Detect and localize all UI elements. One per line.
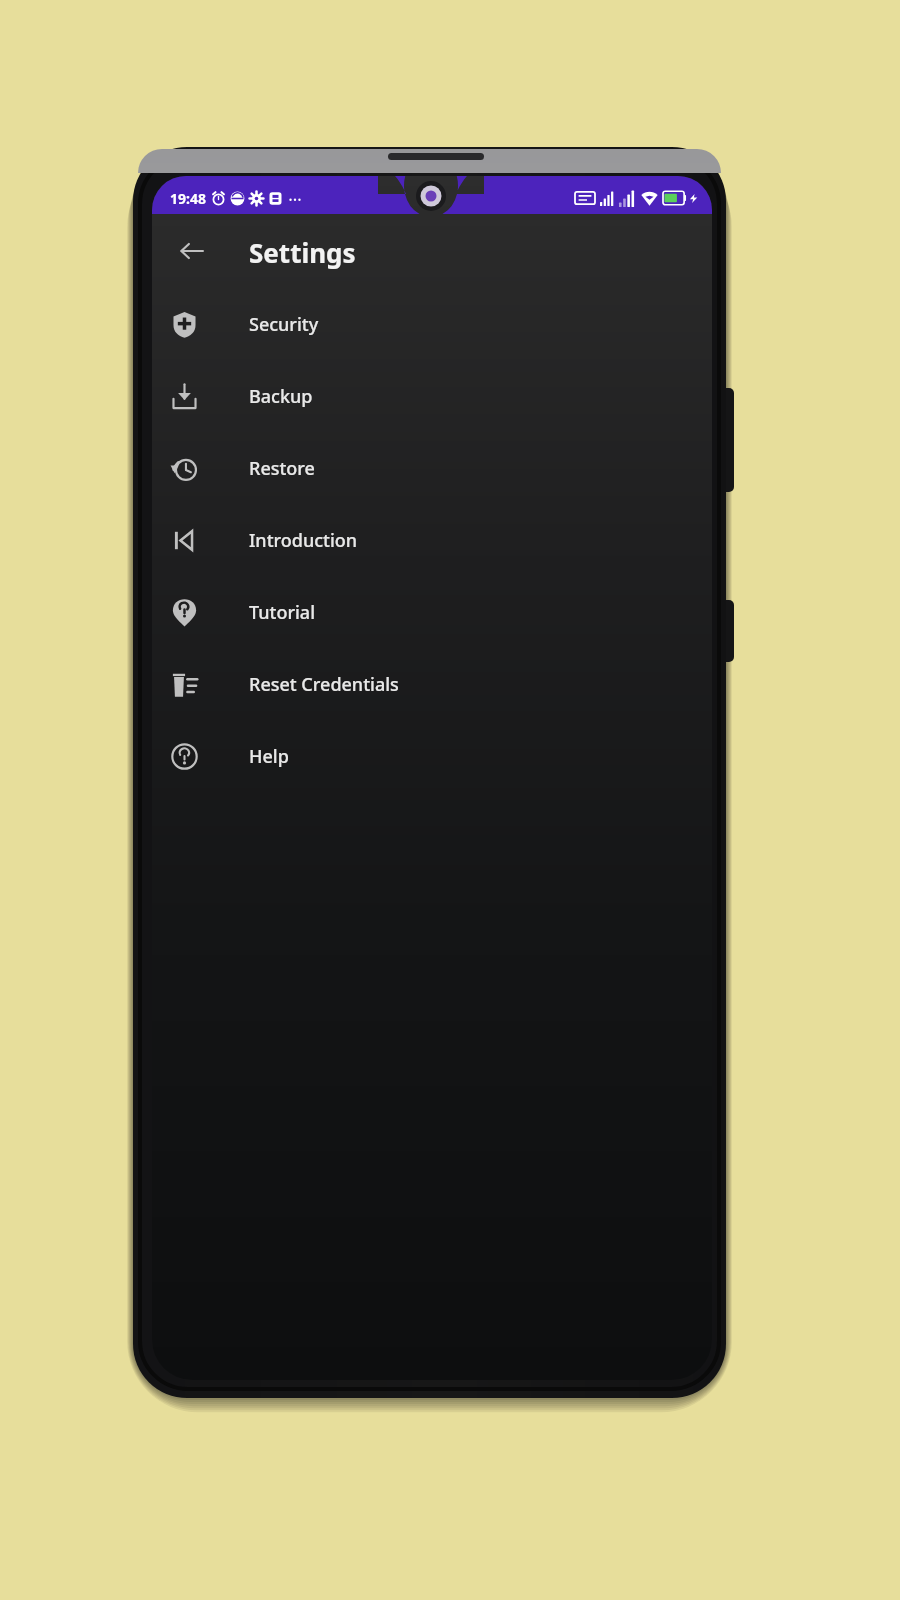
button[interactable]: Introduction <box>152 504 712 576</box>
staticText: Backup <box>249 384 313 409</box>
staticText: Introduction <box>249 528 358 553</box>
button[interactable]: Backup <box>152 360 712 432</box>
staticText: 19:48 <box>170 189 206 208</box>
button[interactable]: Help <box>152 720 712 792</box>
staticText: Help <box>249 744 289 769</box>
button[interactable]: Reset Credentials <box>152 648 712 720</box>
button[interactable]: Security <box>152 288 712 360</box>
button[interactable]: Restore <box>152 432 712 504</box>
staticText: Security <box>249 312 319 337</box>
staticText: Tutorial <box>249 600 316 625</box>
button[interactable]: Back <box>164 223 220 279</box>
button[interactable]: Tutorial <box>152 576 712 648</box>
staticText: Reset Credentials <box>249 672 399 697</box>
staticText: Settings <box>249 235 356 270</box>
staticText: Restore <box>249 456 315 481</box>
